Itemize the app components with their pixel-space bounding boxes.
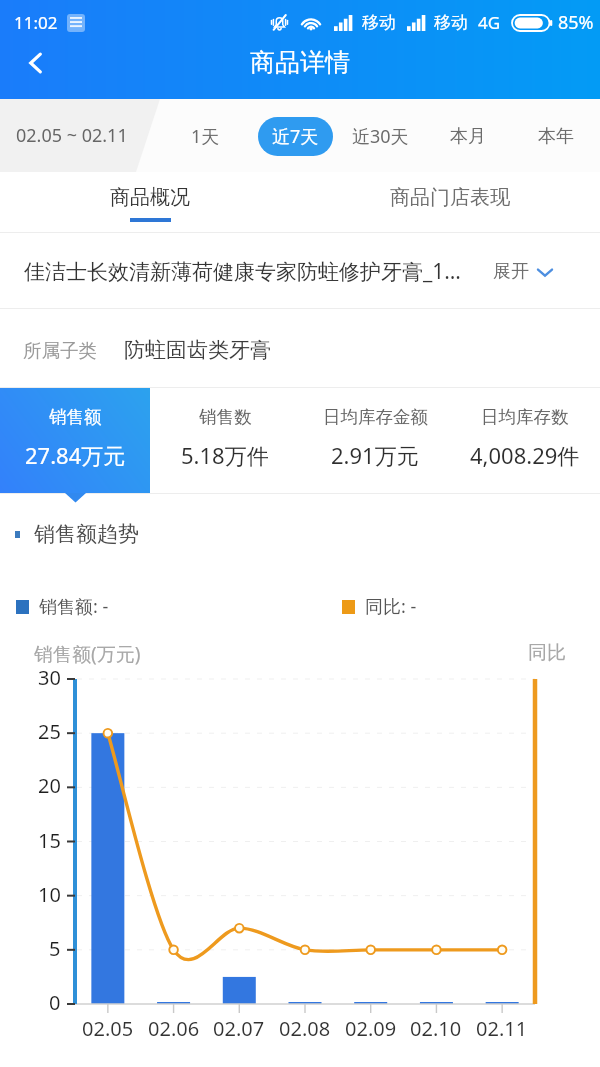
staticText: 本月 <box>450 125 486 148</box>
button[interactable]: 近30天 <box>338 117 423 156</box>
staticText: 销售额趋势 <box>34 521 139 547</box>
staticText: 所属子类 <box>23 339 97 362</box>
button[interactable]: 1天 <box>177 117 234 156</box>
button[interactable]: 销售数 <box>150 388 300 494</box>
staticText: 展开 <box>493 260 529 283</box>
staticText: 4,008.29件 <box>470 440 580 470</box>
staticText: 02.07 <box>213 1015 265 1042</box>
staticText: 1天 <box>191 124 220 149</box>
staticText: 0 <box>49 989 61 1016</box>
button[interactable]: 日均库存金额 <box>300 388 450 494</box>
staticText: 同比: - <box>365 594 417 619</box>
button[interactable]: 商品概况 <box>0 172 300 233</box>
staticText: 02.10 <box>410 1015 462 1042</box>
staticText: 20 <box>38 772 61 799</box>
staticText: 商品概况 <box>110 185 190 210</box>
staticText: 85% <box>558 10 594 35</box>
button[interactable]: 销售额 <box>0 388 150 494</box>
staticText: 02.08 <box>279 1015 331 1042</box>
staticText: 日均库存数 <box>481 406 569 428</box>
staticText: 25 <box>38 718 61 745</box>
staticText: 5.18万件 <box>181 440 269 470</box>
staticText: 移动 <box>434 12 468 33</box>
staticText: 近30天 <box>352 124 409 149</box>
button[interactable]: 近7天 <box>258 117 333 156</box>
staticText: 销售额(万元) <box>34 641 141 667</box>
staticText: 销售额 <box>49 406 102 428</box>
staticText: 移动 <box>362 12 396 33</box>
button[interactable]: 日均库存数 <box>450 388 600 494</box>
staticText: 2.91万元 <box>331 440 419 470</box>
staticText: 近7天 <box>272 124 319 149</box>
staticText: 02.05 <box>82 1015 134 1042</box>
staticText: 02.09 <box>345 1015 397 1042</box>
staticText: 本年 <box>538 125 574 148</box>
staticText: 5 <box>49 935 61 962</box>
staticText: 同比 <box>528 641 566 665</box>
staticText: 销售数 <box>199 406 252 428</box>
staticText: 27.84万元 <box>25 440 126 470</box>
button[interactable]: 展开 <box>493 260 600 283</box>
staticText: 佳洁士长效清新薄荷健康专家防蛀修护牙膏_1… <box>24 257 461 286</box>
staticText: 防蛀固齿类牙膏 <box>124 337 271 363</box>
staticText: 02.06 <box>148 1015 200 1042</box>
staticText: 4G <box>478 11 501 34</box>
staticText: 02.05 ~ 02.11 <box>16 123 128 148</box>
staticText: 商品门店表现 <box>390 185 510 210</box>
button[interactable]: Back <box>0 44 72 81</box>
staticText: 10 <box>38 881 61 908</box>
staticText: 销售额: - <box>39 594 109 619</box>
staticText: 商品详情 <box>250 47 350 78</box>
staticText: 日均库存金额 <box>323 406 428 428</box>
staticText: 02.11 <box>476 1015 528 1042</box>
button[interactable]: 本年 <box>524 118 588 155</box>
staticText: 15 <box>38 827 61 854</box>
staticText: 11:02 <box>14 11 58 34</box>
staticText: 30 <box>38 664 61 691</box>
button[interactable]: 本月 <box>436 118 500 155</box>
button[interactable]: 商品门店表现 <box>300 172 600 233</box>
